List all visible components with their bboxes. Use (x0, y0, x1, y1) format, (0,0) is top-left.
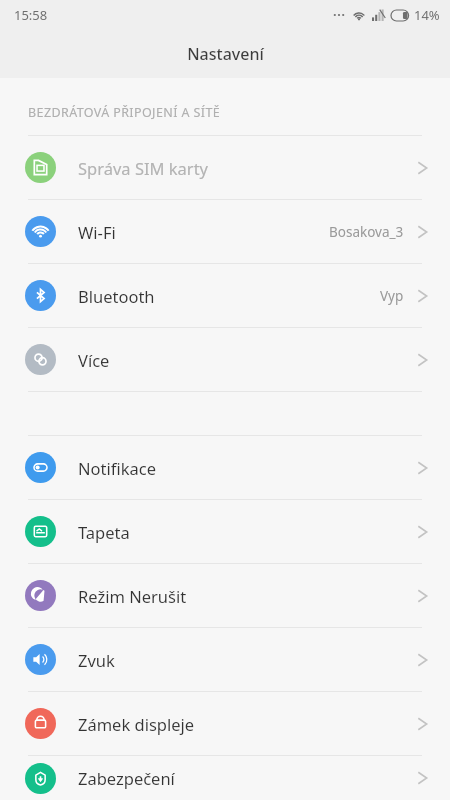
staticText: Zabezpečení (78, 767, 417, 789)
staticText: 15:58 (14, 6, 48, 24)
button[interactable]: Tapeta (0, 500, 450, 563)
button[interactable]: Správa SIM karty (0, 136, 450, 199)
staticText: Notifikace (78, 457, 417, 479)
staticText: Vyp (380, 287, 404, 305)
button[interactable]: Zabezpečení (0, 756, 450, 800)
button[interactable]: Zvuk (0, 628, 450, 691)
staticText: BEZDRÁTOVÁ PŘIPOJENÍ A SÍTĚ (28, 104, 221, 121)
staticText: Bosakova_3 (329, 223, 404, 241)
button[interactable]: Bluetooth (0, 264, 450, 327)
staticText: Nastavení (187, 43, 264, 65)
staticText: Zámek displeje (78, 713, 417, 735)
staticText: Režim Nerušit (78, 585, 417, 607)
staticText: 14% (414, 6, 440, 24)
button[interactable]: Režim Nerušit (0, 564, 450, 627)
button[interactable]: Více (0, 328, 450, 391)
button[interactable]: Wi-Fi (0, 200, 450, 263)
button[interactable]: Zámek displeje (0, 692, 450, 755)
staticText: Správa SIM karty (78, 157, 417, 179)
staticText: Více (78, 349, 417, 371)
staticText: Bluetooth (78, 285, 380, 307)
staticText: Zvuk (78, 649, 417, 671)
button[interactable]: Notifikace (0, 436, 450, 499)
staticText: Tapeta (78, 521, 417, 543)
staticText: Wi-Fi (78, 221, 329, 243)
